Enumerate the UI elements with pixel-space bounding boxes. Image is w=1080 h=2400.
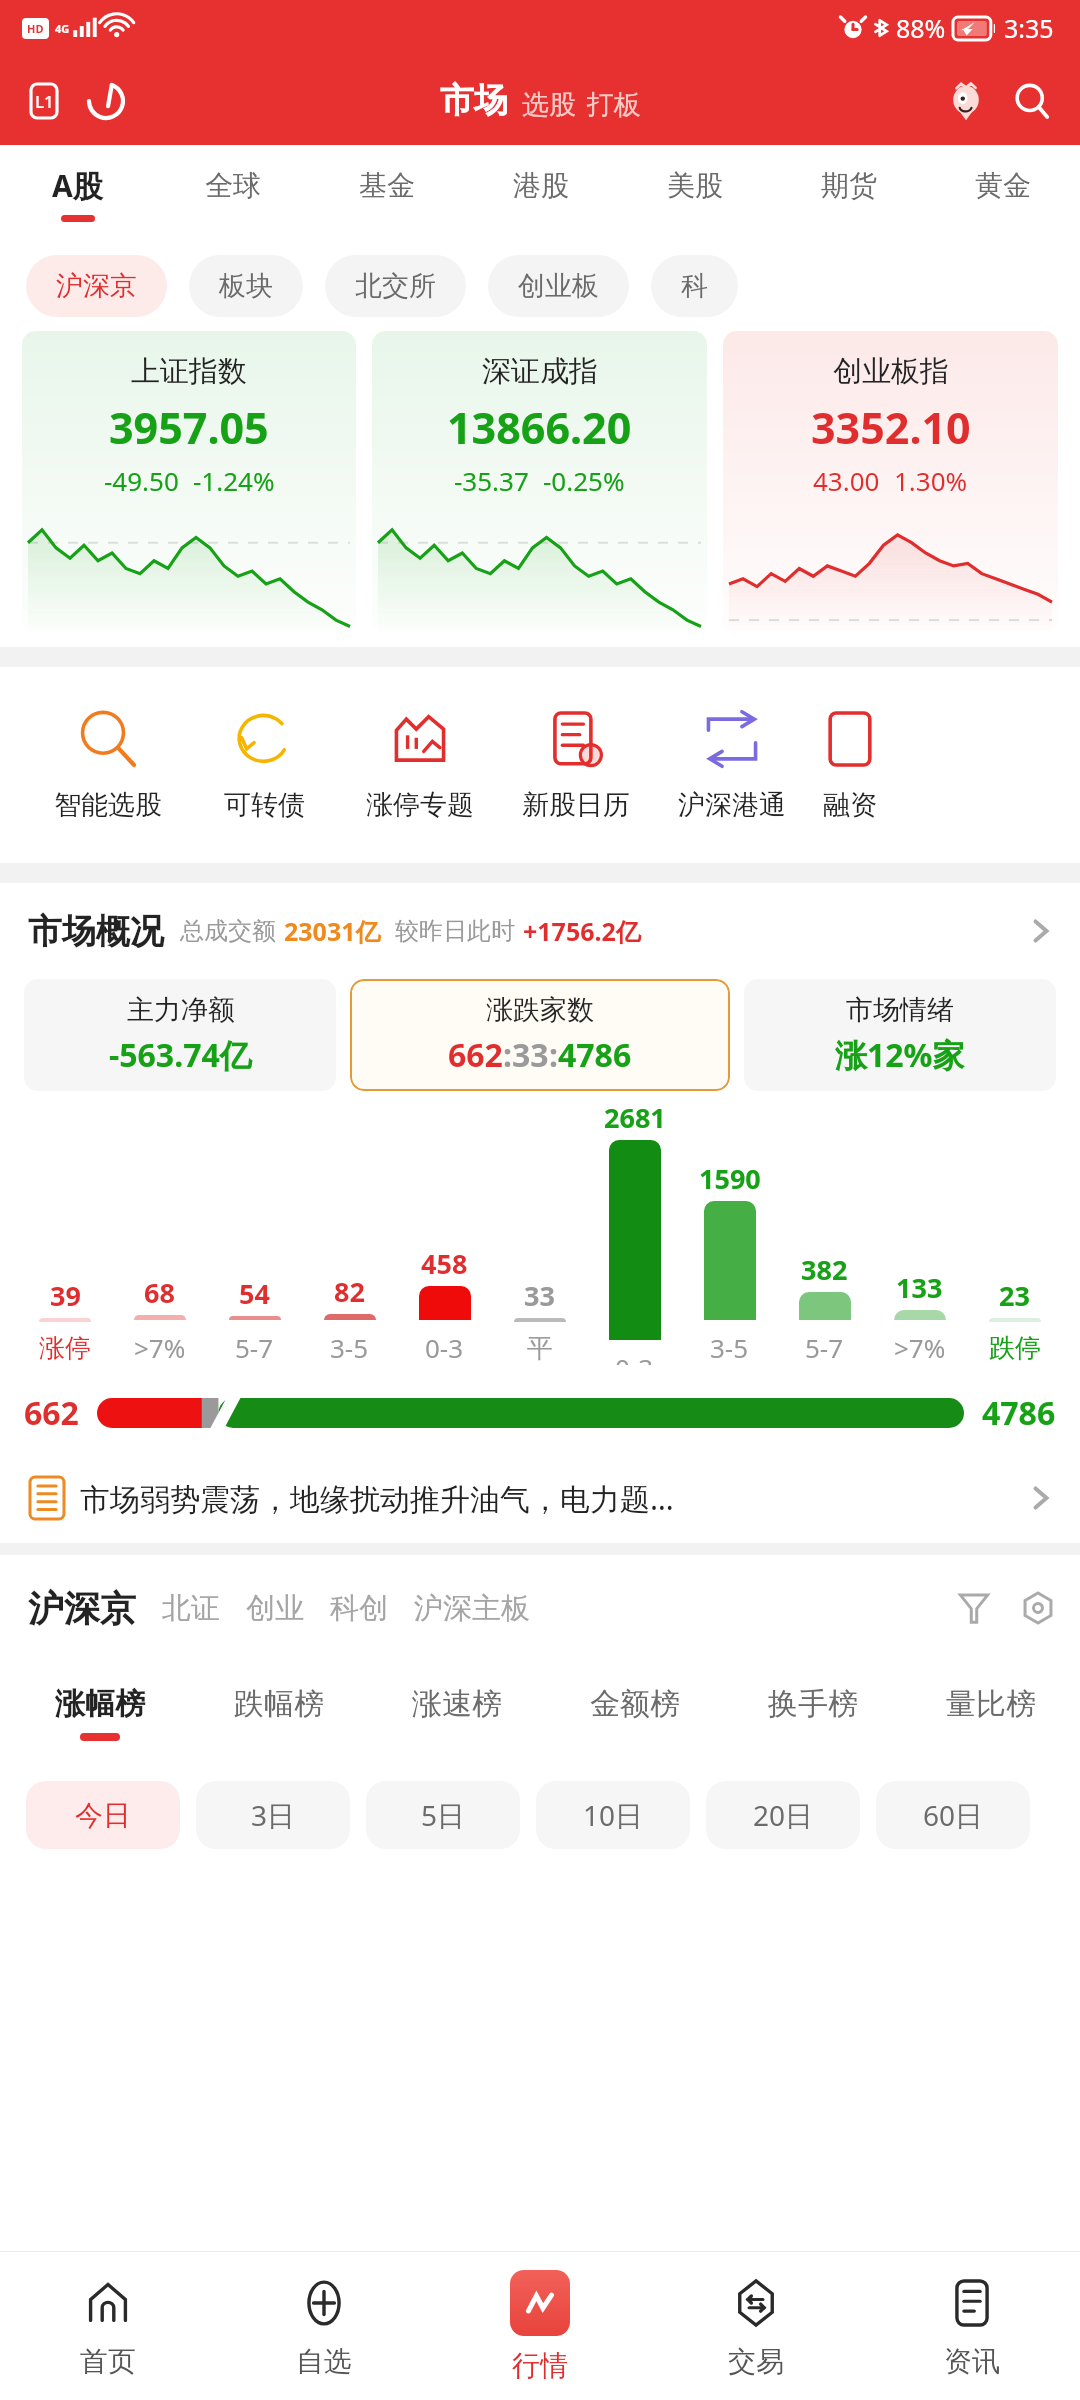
staticText: 平 [527,1332,553,1365]
staticText: 科 [681,269,708,303]
button[interactable]: Level 1 quote [22,79,66,123]
button[interactable]: 新股日历 [498,708,654,822]
staticText: 5日 [421,1796,466,1834]
button[interactable]: 北证 [162,1590,220,1627]
staticText: 60日 [923,1796,984,1834]
button[interactable]: 沪深京 [28,1586,136,1631]
staticText: 133 [896,1269,943,1306]
button[interactable]: 科创 [330,1590,388,1627]
button[interactable]: 市场 [440,79,508,122]
staticText: : [503,1033,512,1077]
button[interactable]: 3日 [196,1781,350,1849]
staticText: 10日 [583,1796,644,1834]
button[interactable]: 行情 [432,2252,648,2400]
staticText: 创业板 [518,269,599,303]
staticText: 自选 [296,2344,352,2379]
button[interactable]: 全球 [155,145,310,241]
button[interactable]: 10日 [536,1781,690,1849]
staticText: 2681 [604,1099,666,1136]
button[interactable]: 市场情绪 [744,979,1056,1091]
button[interactable]: 量比榜 [902,1661,1080,1765]
button[interactable]: 打板 [587,88,641,122]
button[interactable]: 市场弱势震荡，地缘扰动推升油气，电力题… [0,1453,1080,1543]
staticText: 期货 [821,168,877,203]
staticText: 0-3 [615,1350,654,1365]
button[interactable]: 基金 [310,145,464,241]
staticText: 今日 [75,1798,131,1833]
button[interactable]: 涨幅榜 [10,1661,189,1765]
staticText: 3:35 [1004,11,1054,45]
button[interactable]: 20日 [706,1781,860,1849]
staticText: 涨速榜 [412,1685,502,1723]
button[interactable]: 沪深港通 [654,708,810,822]
button[interactable]: 选股 [522,88,576,122]
button[interactable]: 今日 [26,1781,180,1849]
button[interactable]: 60日 [876,1781,1030,1849]
staticText: 382 [801,1251,848,1288]
button[interactable]: 上证指数 [22,331,356,633]
button[interactable]: 深证成指 [372,331,707,633]
staticText: 33 [524,1277,555,1314]
staticText: 1.30% [894,463,968,498]
button[interactable]: 可转债 [186,708,342,822]
button[interactable]: 主力净额 [24,979,336,1091]
button[interactable]: 期货 [772,145,926,241]
button[interactable]: 涨停专题 [342,708,498,822]
button[interactable]: A股 [0,145,155,241]
button[interactable]: 首页 [0,2252,216,2400]
staticText: 创业板指 [833,353,949,390]
staticText: 662 [448,1033,503,1077]
button[interactable]: 自选 [216,2252,432,2400]
staticText: 金额榜 [590,1685,680,1723]
button[interactable]: 港股 [464,145,618,241]
staticText: 量比榜 [946,1685,1036,1723]
staticText: L1 [35,90,54,113]
staticText: 涨12%家 [835,1033,965,1077]
button[interactable]: 黄金 [926,145,1080,241]
button[interactable]: Search [1006,75,1058,127]
staticText: 3日 [251,1796,296,1834]
button[interactable]: 沪深主板 [414,1590,530,1627]
staticText: 沪深港通 [678,788,786,822]
staticText: 行情 [512,2348,568,2383]
staticText: 沪深京 [56,269,137,303]
button[interactable]: 市场概况 [0,883,1080,979]
staticText: 北交所 [355,269,436,303]
staticText: 交易 [728,2344,784,2379]
button[interactable]: 创业板 [488,255,629,317]
staticText: 全球 [205,168,261,203]
staticText: 融资 [823,788,877,822]
button[interactable]: Filter [946,1580,1002,1636]
staticText: 市场弱势震荡，地缘扰动推升油气，电力题… [80,1478,674,1519]
button[interactable]: Assistant [940,75,992,127]
staticText: 43.00 [813,463,880,498]
button[interactable]: 交易 [648,2252,864,2400]
button[interactable]: 板块 [189,255,303,317]
button[interactable]: 换手榜 [724,1661,902,1765]
staticText: -0.25% [543,463,625,498]
button[interactable]: 科 [651,255,738,317]
button[interactable]: 美股 [618,145,772,241]
staticText: : [549,1033,558,1077]
staticText: 68 [144,1274,175,1311]
button[interactable]: 跌幅榜 [189,1661,368,1765]
button[interactable]: 智能选股 [30,708,186,822]
staticText: A股 [52,165,103,206]
staticText: 换手榜 [768,1685,858,1723]
button[interactable]: Night mode [82,77,130,125]
button[interactable]: 5日 [366,1781,520,1849]
button[interactable]: 涨跌家数 [350,979,730,1091]
button[interactable]: 沪深京 [26,255,167,317]
staticText: 33 [512,1033,549,1077]
button[interactable]: 创业板指 [723,331,1058,633]
button[interactable]: 金额榜 [546,1661,724,1765]
button[interactable]: Settings [1010,1580,1066,1636]
button[interactable]: 北交所 [325,255,466,317]
button[interactable]: 融资 [810,708,890,822]
button[interactable]: 涨速榜 [368,1661,546,1765]
staticText: +1756.2亿 [523,914,641,948]
button[interactable]: 创业 [246,1590,304,1627]
staticText: 5-7 [235,1330,274,1365]
button[interactable]: 资讯 [864,2252,1080,2400]
staticText: -563.74亿 [109,1033,252,1077]
